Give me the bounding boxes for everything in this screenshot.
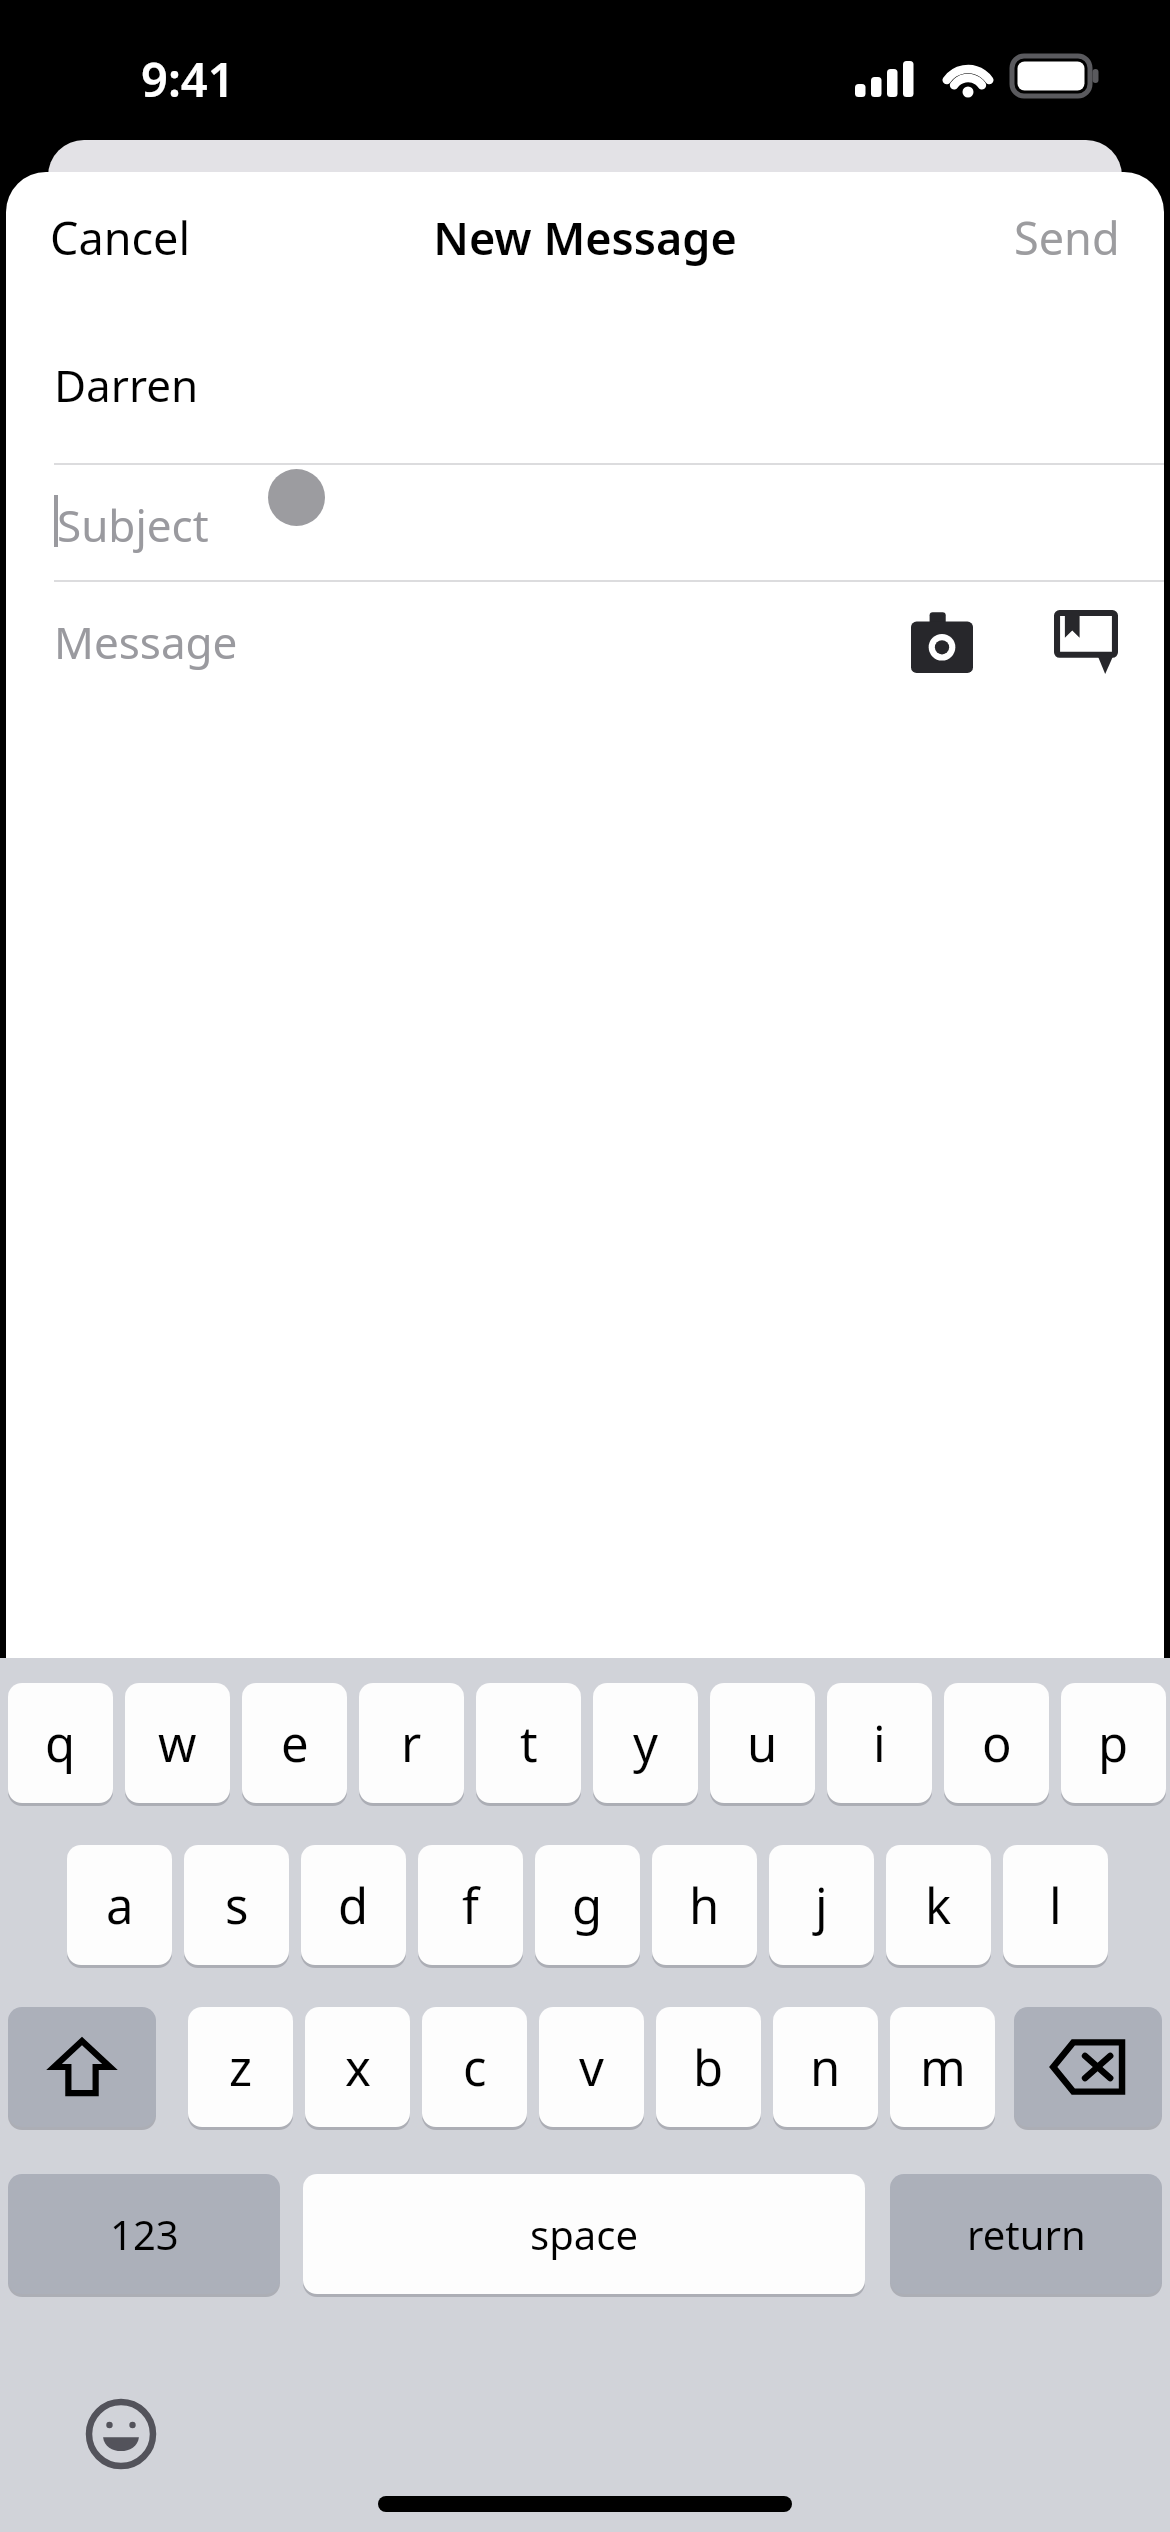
button[interactable]: Shift bbox=[8, 2007, 156, 2127]
staticText: Cancel bbox=[50, 207, 191, 268]
button[interactable]: e bbox=[242, 1683, 347, 1803]
button[interactable]: Message bbox=[54, 612, 238, 672]
staticText: r bbox=[401, 1710, 422, 1777]
staticText: u bbox=[747, 1710, 778, 1777]
staticText: y bbox=[633, 1710, 658, 1777]
button[interactable]: Send bbox=[992, 189, 1142, 286]
staticText: w bbox=[158, 1710, 197, 1777]
button[interactable]: d bbox=[301, 1845, 406, 1965]
button[interactable]: Take photo bbox=[894, 594, 990, 690]
staticText: b bbox=[693, 2034, 724, 2101]
button[interactable]: l bbox=[1003, 1845, 1108, 1965]
staticText: Subject bbox=[57, 495, 209, 555]
staticText: d bbox=[338, 1872, 369, 1939]
staticText: q bbox=[45, 1710, 76, 1777]
staticText: i bbox=[873, 1710, 886, 1777]
button[interactable]: u bbox=[710, 1683, 815, 1803]
staticText: h bbox=[689, 1872, 720, 1939]
button[interactable]: v bbox=[539, 2007, 644, 2127]
staticText: o bbox=[982, 1710, 1012, 1777]
button[interactable]: Cancel bbox=[28, 189, 213, 286]
button[interactable]: j bbox=[769, 1845, 874, 1965]
staticText: n bbox=[810, 2034, 841, 2101]
button[interactable]: Subject bbox=[6, 465, 1164, 580]
staticText: 123 bbox=[110, 2207, 179, 2261]
button[interactable]: Insert sticker bbox=[1038, 594, 1134, 690]
button[interactable]: w bbox=[125, 1683, 230, 1803]
staticText: 9:41 bbox=[141, 47, 235, 111]
staticText: m bbox=[920, 2034, 966, 2101]
button[interactable]: b bbox=[656, 2007, 761, 2127]
staticText: f bbox=[462, 1872, 479, 1939]
button[interactable]: z bbox=[188, 2007, 293, 2127]
button[interactable]: y bbox=[593, 1683, 698, 1803]
button[interactable]: f bbox=[418, 1845, 523, 1965]
staticText: space bbox=[530, 2207, 638, 2261]
button[interactable]: Backspace bbox=[1014, 2007, 1162, 2127]
staticText: j bbox=[815, 1872, 828, 1939]
staticText: x bbox=[345, 2034, 371, 2101]
staticText: t bbox=[520, 1710, 538, 1777]
staticText: k bbox=[925, 1872, 952, 1939]
staticText: a bbox=[106, 1872, 134, 1939]
button[interactable]: Emoji keyboard bbox=[75, 2388, 167, 2480]
staticText: Send bbox=[1014, 207, 1120, 268]
button[interactable]: space bbox=[303, 2174, 865, 2294]
staticText: Darren bbox=[54, 355, 199, 415]
staticText: l bbox=[1049, 1872, 1062, 1939]
staticText: c bbox=[463, 2034, 487, 2101]
button[interactable]: k bbox=[886, 1845, 991, 1965]
button[interactable]: q bbox=[8, 1683, 113, 1803]
button[interactable]: Numbers bbox=[8, 2174, 280, 2294]
staticText: s bbox=[225, 1872, 249, 1939]
button[interactable]: t bbox=[476, 1683, 581, 1803]
button[interactable]: i bbox=[827, 1683, 932, 1803]
button[interactable]: c bbox=[422, 2007, 527, 2127]
staticText: v bbox=[579, 2034, 604, 2101]
button[interactable]: g bbox=[535, 1845, 640, 1965]
button[interactable]: r bbox=[359, 1683, 464, 1803]
staticText: e bbox=[281, 1710, 309, 1777]
staticText: z bbox=[229, 2034, 253, 2101]
button[interactable]: o bbox=[944, 1683, 1049, 1803]
staticText: return bbox=[967, 2207, 1086, 2261]
button[interactable]: Darren bbox=[6, 302, 1164, 463]
button[interactable]: m bbox=[890, 2007, 995, 2127]
button[interactable]: s bbox=[184, 1845, 289, 1965]
staticText: g bbox=[572, 1872, 603, 1939]
button[interactable]: Return bbox=[890, 2174, 1162, 2294]
staticText: p bbox=[1098, 1710, 1129, 1777]
button[interactable]: a bbox=[67, 1845, 172, 1965]
button[interactable]: h bbox=[652, 1845, 757, 1965]
button[interactable]: n bbox=[773, 2007, 878, 2127]
button[interactable]: p bbox=[1061, 1683, 1166, 1803]
staticText: New Message bbox=[433, 207, 737, 268]
button[interactable]: x bbox=[305, 2007, 410, 2127]
